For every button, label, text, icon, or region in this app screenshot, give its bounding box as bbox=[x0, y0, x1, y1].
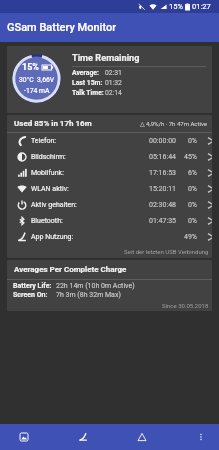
staticText: 15:20:11 bbox=[149, 185, 176, 193]
staticText: 0% bbox=[179, 137, 197, 145]
staticText: 02:30:48 bbox=[149, 201, 176, 209]
staticText: △ 4,9%/h · 7h 47m Active bbox=[140, 120, 207, 127]
staticText: 0% bbox=[179, 201, 197, 209]
staticText: 02:31 bbox=[105, 69, 122, 77]
button[interactable]: More options bbox=[178, 424, 219, 450]
button[interactable]: WLAN aktiv: bbox=[7, 181, 212, 197]
staticText: Telefon: bbox=[31, 137, 56, 145]
staticText: 49% bbox=[179, 233, 197, 241]
staticText: 15% bbox=[22, 62, 39, 73]
staticText: Used 85% in 17h 16m bbox=[14, 119, 92, 128]
staticText: 0% bbox=[179, 217, 197, 225]
staticText: GSam Battery Monitor bbox=[7, 21, 117, 34]
staticText: 7h 3m (8h 32m Max) bbox=[56, 291, 121, 299]
staticText: WLAN aktiv: bbox=[31, 185, 69, 193]
staticText: Seit der letzten USB Verbindung bbox=[124, 248, 209, 255]
staticText: Bildschirm: bbox=[31, 153, 66, 161]
staticText: Since 30.05.2018 bbox=[162, 302, 209, 309]
staticText: 01:27 bbox=[192, 2, 211, 11]
staticText: 45% bbox=[179, 153, 197, 161]
staticText: -174 mA bbox=[24, 87, 50, 95]
staticText: 02:14 bbox=[105, 89, 122, 97]
button[interactable]: Bluetooth: bbox=[7, 213, 212, 229]
staticText: 0% bbox=[179, 185, 197, 193]
button[interactable]: Mobilfunk: bbox=[7, 165, 212, 181]
staticText: Averages Per Complete Charge bbox=[14, 265, 127, 274]
staticText: Talk Time: bbox=[72, 89, 104, 97]
staticText: 6% bbox=[179, 169, 197, 177]
button[interactable]: Charts bbox=[1, 424, 47, 450]
staticText: Aktiv gehalten: bbox=[31, 201, 77, 209]
staticText: 17:16:53 bbox=[149, 169, 176, 177]
staticText: Mobilfunk: bbox=[31, 169, 64, 177]
staticText: App Nutzung: bbox=[31, 233, 74, 241]
staticText: Last 15m: bbox=[72, 79, 103, 87]
staticText: Average: bbox=[72, 69, 99, 77]
button[interactable]: App Nutzung: bbox=[7, 229, 212, 245]
button[interactable]: Telefon: bbox=[7, 133, 212, 149]
button[interactable]: Aktiv gehalten: bbox=[7, 197, 212, 213]
button[interactable]: App usage bbox=[60, 424, 106, 450]
staticText: Battery Life: bbox=[13, 282, 52, 290]
staticText: 15% bbox=[169, 2, 183, 11]
button[interactable]: Stats bbox=[119, 424, 165, 450]
staticText: 00:00:00 bbox=[149, 137, 176, 145]
staticText: 30°C 3,66V bbox=[19, 76, 55, 84]
staticText: 01:32 bbox=[105, 79, 122, 87]
staticText: 22h 14m (10h 0m Active) bbox=[56, 282, 135, 290]
staticText: Screen On: bbox=[13, 291, 48, 299]
staticText: 01:47:35 bbox=[149, 217, 176, 225]
button[interactable]: Bildschirm: bbox=[7, 149, 212, 165]
staticText: Bluetooth: bbox=[31, 217, 63, 225]
staticText: Time Remaining bbox=[72, 52, 140, 63]
staticText: 05:16:44 bbox=[149, 153, 176, 161]
